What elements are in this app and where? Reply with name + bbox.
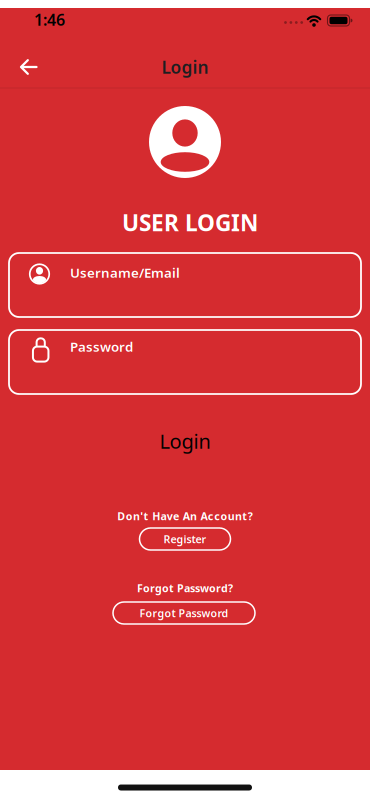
button[interactable]: Password xyxy=(9,330,361,394)
staticText: Forgot Password xyxy=(139,606,228,620)
button[interactable]: Back xyxy=(20,59,38,74)
staticText: Forgot Password? xyxy=(137,581,233,595)
button[interactable]: Register xyxy=(139,528,230,550)
staticText: Register xyxy=(163,532,206,546)
staticText: Login xyxy=(161,55,208,78)
staticText: Password xyxy=(70,338,133,355)
staticText: USER LOGIN xyxy=(122,207,258,237)
staticText: 1:46 xyxy=(34,9,65,30)
button[interactable]: Forgot Password xyxy=(113,602,255,624)
staticText: Login xyxy=(159,428,210,454)
staticText: Username/Email xyxy=(70,264,180,281)
staticText: Don't Have An Account? xyxy=(117,509,253,523)
button[interactable]: Username/Email xyxy=(9,253,361,317)
button[interactable]: Login xyxy=(125,424,245,458)
